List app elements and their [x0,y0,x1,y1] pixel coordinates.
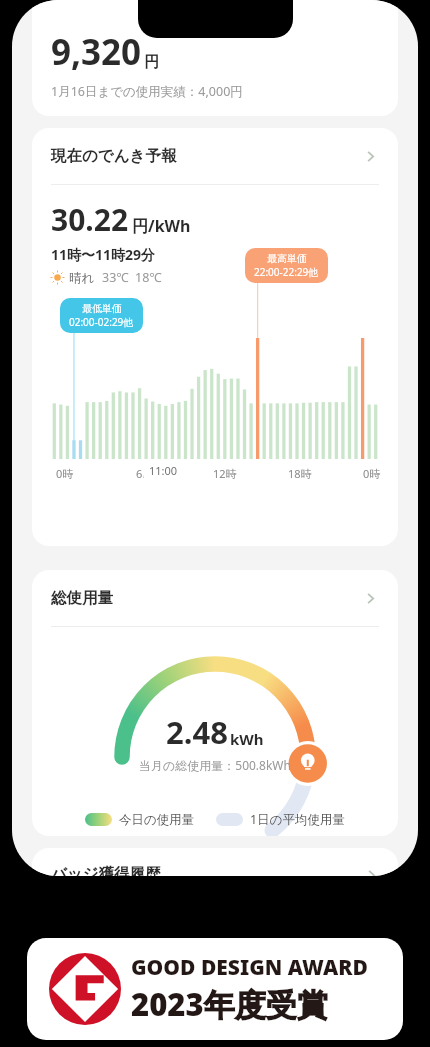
staticText: 30.22 [51,199,129,240]
staticText: 11:00 [149,463,178,478]
staticText: 6時 [136,466,154,481]
button[interactable]: GOOD DESIGN AWARD 2023年度受賞 [27,938,403,1040]
staticText: 総使用量 [51,588,113,608]
staticText: 円 [144,53,159,72]
button[interactable]: 現在のでんき予報 [32,128,398,184]
staticText: 最低単価 [82,302,122,315]
staticText: 1日の平均使用量 [250,811,345,828]
button[interactable]: 9,320 [32,0,398,116]
button[interactable]: 総使用量 [32,570,398,626]
staticText: 現在のでんき予報 [51,146,177,166]
staticText: 33℃ [102,269,129,286]
staticText: 02:00-02:29他 [69,315,134,329]
staticText: 当月の総使用量：500.8kWh [139,757,291,773]
staticText: 2023年度受賞 [131,983,328,1025]
staticText: 最高単価 [267,252,307,265]
staticText: GOOD DESIGN AWARD [131,953,368,982]
staticText: 晴れ [69,270,95,286]
staticText: kWh [230,729,264,749]
button[interactable]: バッジ獲得履歴 [32,848,398,876]
staticText: 12時 [213,466,237,481]
staticText: 今日の使用量 [119,812,195,828]
staticText: 22:00-22:29他 [254,265,319,279]
staticText: 2.48 [166,711,228,753]
staticText: 0時 [56,466,74,481]
staticText: 1月16日までの使用実績：4,000円 [51,83,243,100]
staticText: 円/kWh [132,215,191,237]
staticText: 18℃ [135,269,162,286]
staticText: バッジ獲得履歴 [51,864,161,876]
staticText: 0時 [363,466,381,481]
staticText: 18時 [288,466,312,481]
staticText: 11時〜11時29分 [51,245,156,264]
staticText: 9,320 [51,28,142,76]
